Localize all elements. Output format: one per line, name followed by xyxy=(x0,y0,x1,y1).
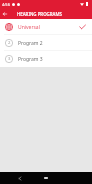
button[interactable]: 3 xyxy=(0,51,92,67)
staticText: 3 xyxy=(8,56,11,62)
button[interactable]: 2 xyxy=(0,35,92,51)
staticText: 4:56 xyxy=(2,2,10,7)
button[interactable]: Navigate up xyxy=(0,8,10,19)
staticText: Universal xyxy=(18,24,40,31)
staticText: 2 xyxy=(8,40,11,46)
staticText: Program 2 xyxy=(18,40,43,47)
button[interactable]: Home xyxy=(42,174,50,182)
staticText: HEARING PROGRAMS xyxy=(17,11,62,17)
button[interactable]: Back xyxy=(17,176,22,181)
staticText: Program 3 xyxy=(18,56,43,63)
button[interactable]: Universal xyxy=(0,19,92,35)
